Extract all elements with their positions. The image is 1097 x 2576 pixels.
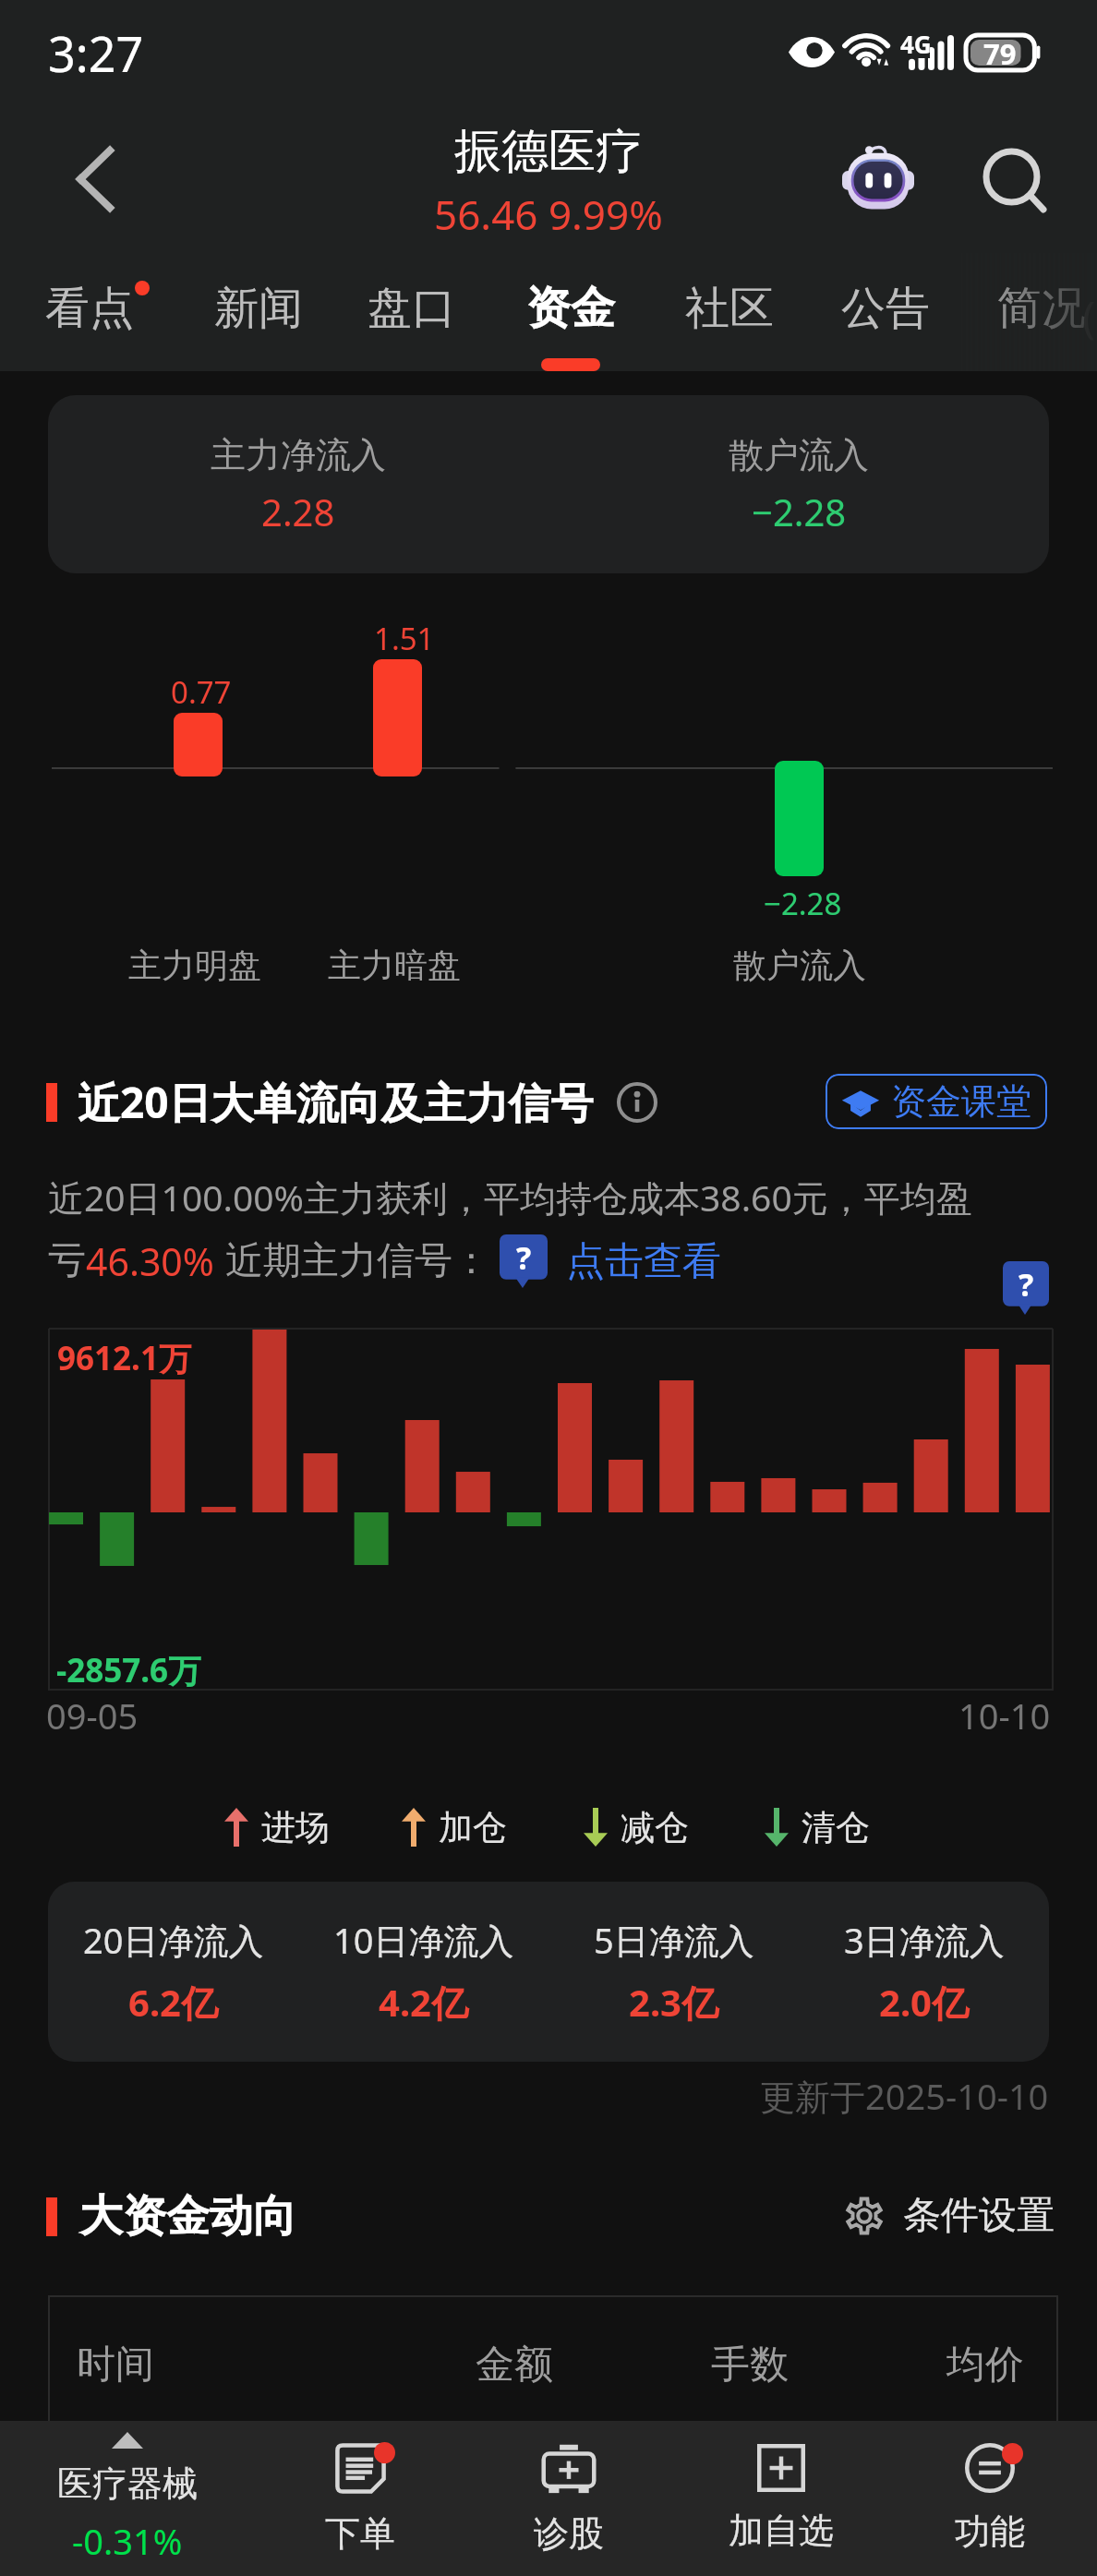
button[interactable]: Info <box>614 1079 660 1125</box>
button[interactable]: 盘口 <box>336 253 488 371</box>
button[interactable]: 下单 <box>259 2421 462 2576</box>
button[interactable]: 资金 <box>495 253 646 371</box>
staticText: -0.31% <box>72 2517 183 2565</box>
button[interactable]: 功能 <box>888 2421 1091 2576</box>
staticText: 亏 <box>48 1237 86 1285</box>
staticText: 1.51 <box>374 618 435 659</box>
staticText: 公告 <box>841 281 930 336</box>
staticText: 加仓 <box>439 1806 507 1848</box>
staticText: 主力暗盘 <box>328 945 461 986</box>
staticText: 主力明盘 <box>128 945 261 986</box>
staticText: ? <box>516 1236 532 1279</box>
staticText: 手数 <box>711 2341 789 2389</box>
staticText: ? <box>1019 1263 1034 1306</box>
staticText: 5日净流入 <box>594 1916 754 1964</box>
staticText: 0.77 <box>171 671 232 713</box>
staticText: 46.30% <box>86 1235 214 1287</box>
staticText: 下单 <box>325 2511 395 2556</box>
staticText: 3:27 <box>48 20 144 86</box>
staticText: 条件设置 <box>903 2192 1055 2240</box>
button[interactable]: 点击查看 <box>566 1237 721 1286</box>
staticText: 加自选 <box>729 2509 834 2553</box>
staticText: 2.28 <box>261 487 335 536</box>
staticText: 进场 <box>261 1806 330 1848</box>
staticText: 诊股 <box>534 2511 604 2556</box>
staticText: 79 <box>983 34 1017 69</box>
staticText: 4G <box>900 28 932 60</box>
staticText: 振德医疗 <box>454 122 643 181</box>
staticText: 09-05 <box>46 1691 139 1739</box>
staticText: −2.28 <box>764 883 842 924</box>
staticText: -2857.6万 <box>56 1648 201 1692</box>
staticText: 近期主力信号： <box>225 1237 490 1285</box>
button[interactable]: 条件设置 <box>846 2192 1055 2240</box>
button[interactable]: Help <box>1003 1261 1049 1315</box>
staticText: 减仓 <box>621 1806 689 1848</box>
staticText: 清仓 <box>802 1806 870 1848</box>
staticText: 均价 <box>946 2341 1024 2389</box>
button[interactable]: 资金课堂 <box>826 1074 1047 1129</box>
staticText: 2.0亿 <box>879 1977 969 2028</box>
button[interactable]: 简况 <box>966 253 1097 371</box>
staticText: 社区 <box>685 281 774 336</box>
staticText: 3日净流入 <box>844 1916 1005 1964</box>
staticText: 4.2亿 <box>379 1977 468 2028</box>
button[interactable]: 医疗器械 <box>17 2421 238 2576</box>
button[interactable]: AI assistant <box>822 105 933 253</box>
staticText: 医疗器械 <box>57 2462 198 2506</box>
staticText: ( <box>1082 286 1096 346</box>
staticText: 功能 <box>955 2510 1025 2554</box>
button[interactable]: 公告 <box>810 253 961 371</box>
staticText: 看点 <box>45 281 134 336</box>
staticText: 资金 <box>526 281 615 336</box>
staticText: 散户流入 <box>729 433 869 477</box>
staticText: 盘口 <box>368 281 456 336</box>
button[interactable]: 主力净流入 <box>48 395 1049 573</box>
button[interactable]: Search <box>951 105 1097 253</box>
staticText: 2.3亿 <box>629 1977 718 2028</box>
staticText: 金额 <box>476 2341 553 2389</box>
staticText: 10-10 <box>958 1691 1051 1739</box>
button[interactable]: 社区 <box>654 253 805 371</box>
button[interactable]: 加自选 <box>680 2421 883 2576</box>
button[interactable]: Back <box>0 105 185 253</box>
staticText: 新闻 <box>214 281 303 336</box>
staticText: 近20日100.00%主力获利，平均持仓成本38.60元，平均盈 <box>48 1173 972 1222</box>
staticText: 56.46 9.99% <box>434 187 663 242</box>
staticText: 大资金动向 <box>79 2189 296 2244</box>
button[interactable]: 看点 <box>14 253 165 371</box>
button[interactable]: 新闻 <box>183 253 334 371</box>
staticText: 20日净流入 <box>83 1916 264 1964</box>
button[interactable]: 诊股 <box>467 2421 670 2576</box>
staticText: 主力净流入 <box>211 433 386 477</box>
staticText: 9612.1万 <box>57 1336 191 1380</box>
staticText: 近20日大单流向及主力信号 <box>78 1073 594 1131</box>
staticText: 6.2亿 <box>128 1977 218 2028</box>
staticText: 资金课堂 <box>891 1079 1031 1124</box>
staticText: 更新于2025-10-10 <box>760 2072 1049 2120</box>
staticText: 时间 <box>77 2341 154 2389</box>
staticText: 散户流入 <box>733 945 866 986</box>
staticText: 10日净流入 <box>333 1916 514 1964</box>
staticText: 简况 <box>997 281 1086 336</box>
staticText: −2.28 <box>752 487 847 536</box>
